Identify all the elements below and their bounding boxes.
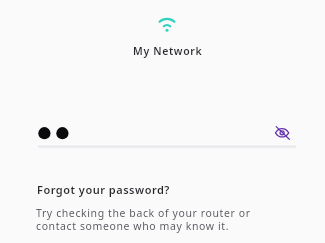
staticText: Forgot your password? bbox=[37, 182, 170, 197]
button[interactable]: Password bbox=[36, 120, 236, 146]
staticText: My Network bbox=[133, 44, 203, 58]
staticText: Try checking the back of your router or … bbox=[36, 206, 251, 233]
button[interactable]: Forgot your password? bbox=[37, 182, 171, 197]
button[interactable]: Hide password bbox=[271, 121, 295, 145]
